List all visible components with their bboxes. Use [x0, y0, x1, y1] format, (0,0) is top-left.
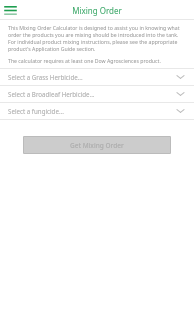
staticText: Get Mixing Order — [70, 141, 124, 150]
staticText: The calculator requires at least one Dow… — [8, 57, 161, 64]
button[interactable]: Select a Grass Herbicide... — [0, 69, 194, 85]
button[interactable]: Select a Broadleaf Herbicide... — [0, 86, 194, 102]
button[interactable]: Select a fungicide... — [0, 103, 194, 119]
staticText: Mixing Order — [72, 5, 122, 16]
staticText: Select a fungicide... — [8, 107, 177, 115]
staticText: Select a Broadleaf Herbicide... — [8, 90, 177, 98]
staticText: This Mixing Order Calculator is designed… — [8, 24, 186, 52]
button[interactable]: Get Mixing Order — [24, 137, 170, 153]
staticText: Select a Grass Herbicide... — [8, 73, 177, 81]
button[interactable]: Menu — [0, 0, 20, 20]
